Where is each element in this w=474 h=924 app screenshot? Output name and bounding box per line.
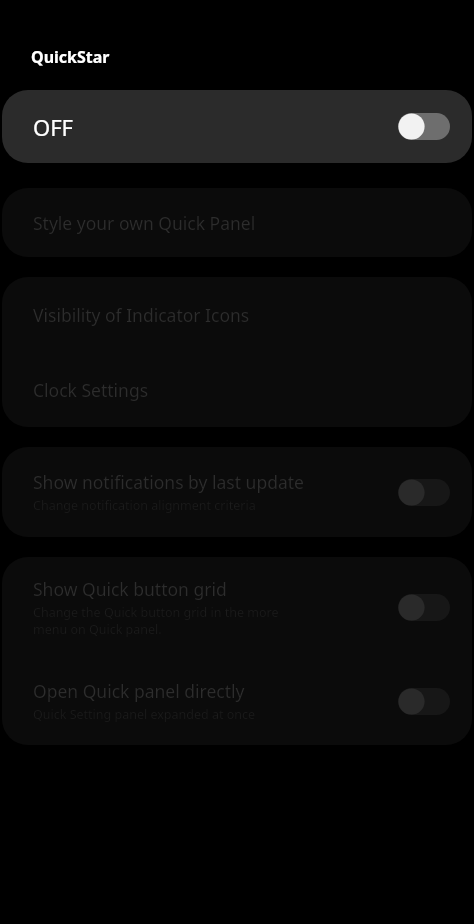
staticText: Clock Settings bbox=[33, 378, 149, 402]
button[interactable]: Open Quick panel directly bbox=[2, 657, 472, 745]
button[interactable]: Show notifications by last update bbox=[2, 447, 472, 537]
other: Show notifications by last update bbox=[398, 479, 450, 506]
button[interactable]: Show Quick button grid bbox=[2, 557, 472, 657]
button[interactable]: OFF bbox=[2, 90, 472, 163]
other: Enable QuickStar bbox=[398, 113, 450, 140]
staticText: Change notification alignment criteria bbox=[33, 497, 256, 514]
staticText: OFF bbox=[33, 112, 398, 142]
button[interactable]: Style your own Quick Panel bbox=[2, 188, 472, 257]
staticText: QuickStar bbox=[31, 46, 110, 68]
staticText: Visibility of Indicator Icons bbox=[33, 303, 250, 327]
other: Open Quick panel directly bbox=[398, 688, 450, 715]
button[interactable]: Visibility of Indicator Icons bbox=[2, 277, 472, 352]
staticText: Quick Setting panel expanded at once bbox=[33, 706, 256, 723]
button[interactable]: Clock Settings bbox=[2, 352, 472, 427]
staticText: Style your own Quick Panel bbox=[33, 211, 256, 235]
staticText: Show notifications by last update bbox=[33, 470, 304, 494]
other: Show Quick button grid bbox=[398, 594, 450, 621]
staticText: Change the Quick button grid in the more… bbox=[33, 604, 279, 637]
staticText: Show Quick button grid bbox=[33, 577, 227, 601]
staticText: Open Quick panel directly bbox=[33, 679, 245, 703]
